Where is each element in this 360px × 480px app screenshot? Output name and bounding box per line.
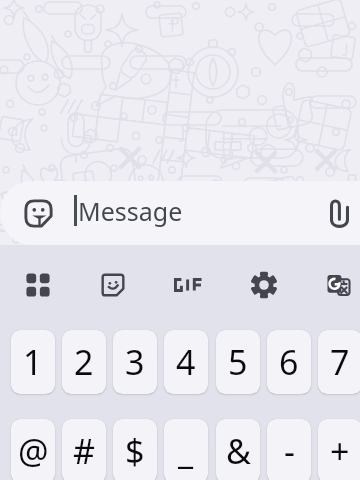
staticText: _ bbox=[178, 428, 194, 474]
button[interactable]: Attach file bbox=[315, 192, 360, 234]
button[interactable]: - bbox=[267, 419, 311, 480]
button[interactable] bbox=[164, 263, 213, 307]
button[interactable]: 5 bbox=[216, 330, 260, 394]
staticText: 7 bbox=[330, 339, 350, 385]
staticText: 3 bbox=[125, 339, 145, 385]
button[interactable]: 1 bbox=[11, 330, 55, 394]
button[interactable]: 6 bbox=[267, 330, 311, 394]
staticText: 4 bbox=[176, 339, 196, 385]
button[interactable]: Settings bbox=[239, 263, 288, 307]
button[interactable]: 2 bbox=[62, 330, 106, 394]
button[interactable]: 4 bbox=[164, 330, 208, 394]
staticText: 2 bbox=[74, 339, 94, 385]
button[interactable]: Translate bbox=[314, 263, 360, 307]
button[interactable]: _ bbox=[164, 419, 208, 480]
button[interactable]: # bbox=[62, 419, 106, 480]
button[interactable]: Apps bbox=[13, 263, 62, 307]
button[interactable]: $ bbox=[113, 419, 157, 480]
button[interactable]: Emoji bbox=[14, 192, 62, 234]
button[interactable]: Stickers bbox=[88, 263, 137, 307]
staticText: 6 bbox=[279, 339, 299, 385]
staticText: & bbox=[226, 428, 251, 474]
staticText: - bbox=[284, 428, 295, 474]
staticText: # bbox=[73, 428, 95, 474]
button[interactable]: 7 bbox=[318, 330, 360, 394]
staticText: $ bbox=[125, 428, 145, 474]
staticText: @ bbox=[18, 428, 49, 474]
staticText: + bbox=[330, 428, 350, 474]
button[interactable]: 3 bbox=[113, 330, 157, 394]
staticText: 1 bbox=[23, 339, 43, 385]
button[interactable]: @ bbox=[11, 419, 55, 480]
button[interactable]: + bbox=[318, 419, 360, 480]
button[interactable]: Emoji bbox=[0, 181, 360, 245]
staticText: 5 bbox=[228, 339, 248, 385]
staticText: Message bbox=[78, 194, 183, 228]
button[interactable]: & bbox=[216, 419, 260, 480]
